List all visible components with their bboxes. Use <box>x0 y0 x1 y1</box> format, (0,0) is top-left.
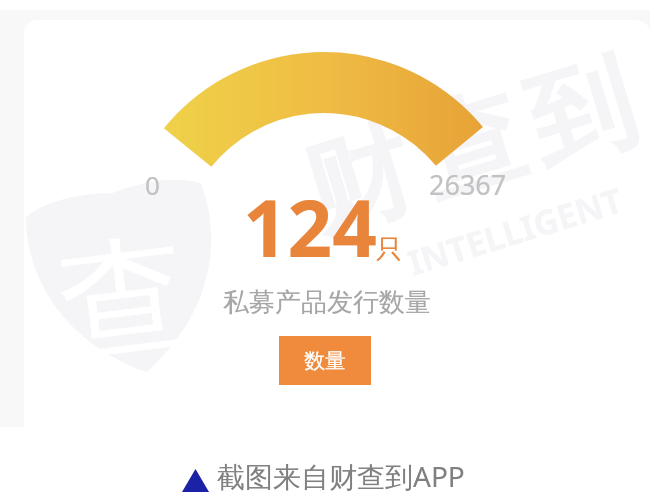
staticText: 124 <box>243 174 377 280</box>
staticText: 26367 <box>429 166 507 203</box>
staticText: 0 <box>145 167 160 202</box>
staticText: 数量 <box>304 348 346 374</box>
staticText: 私募产品发行数量 <box>223 286 431 319</box>
staticText: 只 <box>376 233 402 266</box>
staticText: INTELLIGENT <box>402 177 628 285</box>
button[interactable] <box>24 20 650 427</box>
staticText: 财查到 <box>285 34 650 260</box>
button[interactable]: 数量 <box>279 336 371 385</box>
staticText: 截图来自财查到APP <box>217 457 465 495</box>
other: Screenshot source <box>182 469 209 492</box>
staticText: 查 <box>50 213 194 367</box>
